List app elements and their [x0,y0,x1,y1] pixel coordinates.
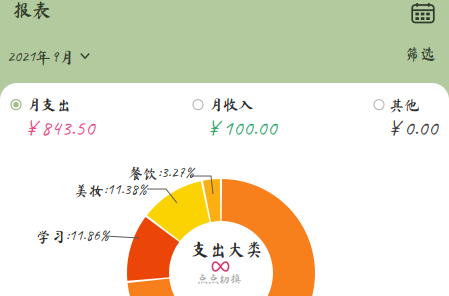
staticText: ¥ 843.50 [26,114,95,141]
staticText: 报表 [13,0,51,19]
staticText: ¥ 100.00 [208,114,277,141]
staticText: 点点切换 [197,273,241,284]
button[interactable]: 月支出 [11,97,95,141]
staticText: 月收入 [208,97,253,112]
staticText: ¥ 0.00 [389,114,438,141]
button[interactable]: 其他 [374,97,438,141]
button[interactable]: 月收入 [193,97,277,141]
staticText: 筛选 [404,46,436,62]
staticText: 餐饮:3.27% [128,163,194,181]
button[interactable]: 筛选 [404,46,436,62]
button[interactable]: 2021年9月 [7,46,90,66]
staticText: 月支出 [26,97,71,112]
button[interactable]: Calendar [411,2,436,26]
staticText: 支出大类 [191,240,263,258]
staticText: 美妆:11.38% [74,180,147,198]
staticText: 2021年9月 [7,46,74,66]
staticText: 学习:11.86% [36,226,109,244]
staticText: 其他 [389,97,419,112]
